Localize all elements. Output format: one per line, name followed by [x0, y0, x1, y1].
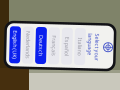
button[interactable]: Deutsch	[41, 59, 78, 70]
button[interactable]: Italiano	[41, 20, 78, 31]
button[interactable]: Nederlands	[41, 72, 78, 83]
button[interactable]: Español	[41, 33, 78, 44]
button[interactable]: Français	[41, 46, 78, 57]
staticText: Español	[50, 35, 69, 43]
staticText: Italiano	[51, 22, 69, 30]
staticText: Deutsch	[49, 61, 70, 69]
staticText: Français	[49, 48, 70, 56]
